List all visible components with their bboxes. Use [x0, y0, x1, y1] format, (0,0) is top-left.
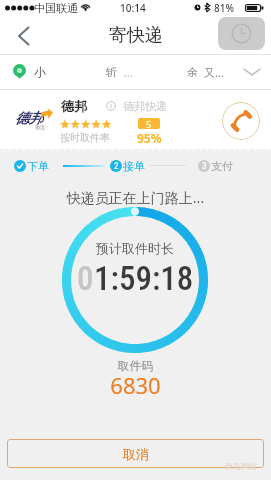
- staticText: 10:14: [120, 1, 146, 15]
- staticText: 录鸟网站: [225, 461, 257, 471]
- button[interactable]: 取消: [7, 439, 264, 468]
- staticText: 接单: [123, 159, 145, 173]
- button[interactable]: 下单: [14, 159, 49, 173]
- staticText: 5: [146, 118, 152, 129]
- staticText: 预计取件时长: [62, 240, 208, 256]
- staticText: 中国联通: [34, 1, 78, 15]
- staticText: 2: [114, 161, 119, 172]
- staticText: 取消: [123, 446, 149, 462]
- button[interactable]: 3: [198, 159, 233, 173]
- staticText: 6830: [0, 370, 271, 400]
- staticText: 德邦快递: [123, 99, 167, 113]
- staticText: 3: [202, 161, 207, 172]
- staticText: 快递员正在上门路上...: [0, 188, 271, 207]
- staticText: 按时取件率: [60, 131, 110, 144]
- staticText: ...: [124, 65, 133, 80]
- button[interactable]: 小: [0, 55, 271, 89]
- staticText: 81%: [214, 1, 234, 15]
- button[interactable]: Back: [8, 17, 38, 54]
- button[interactable]: Assistive touch: [218, 17, 265, 50]
- staticText: 余: [187, 65, 198, 79]
- staticText: 1:59:18: [94, 259, 194, 298]
- staticText: 寄快递: [109, 24, 163, 47]
- staticText: 下单: [27, 159, 49, 173]
- staticText: 0: [77, 259, 94, 298]
- staticText: 德邦: [15, 110, 43, 128]
- staticText: 支付: [211, 159, 233, 173]
- staticText: 取件码: [0, 358, 271, 373]
- staticText: 95%: [137, 130, 162, 146]
- staticText: 又...: [204, 65, 224, 80]
- button[interactable]: 2: [110, 159, 145, 173]
- staticText: 斩: [106, 65, 117, 79]
- staticText: 物流: [35, 124, 45, 130]
- staticText: 德邦: [61, 98, 87, 114]
- staticText: 小: [34, 64, 46, 79]
- button[interactable]: Call courier: [222, 102, 260, 140]
